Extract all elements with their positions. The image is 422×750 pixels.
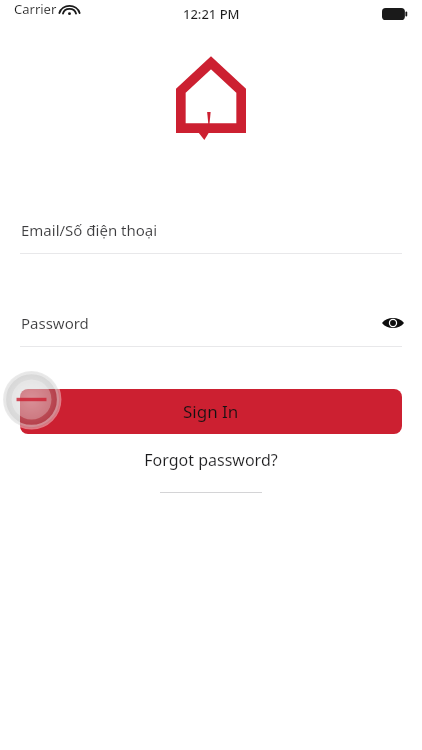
button[interactable]: Accessibility shortcut: [3, 371, 60, 428]
button[interactable]: Show password: [376, 306, 410, 340]
staticText: Sign In: [183, 400, 239, 423]
staticText: 12:21 PM: [183, 5, 240, 23]
button[interactable]: Email/Số điện thoại: [0, 206, 422, 254]
staticText: Forgot password?: [144, 449, 278, 471]
staticText: Email/Số điện thoại: [21, 220, 158, 240]
button[interactable]: Sign In: [20, 389, 402, 434]
staticText: Password: [21, 313, 89, 333]
button[interactable]: Forgot password?: [134, 445, 288, 475]
button[interactable]: [0, 299, 422, 347]
staticText: Carrier: [14, 0, 57, 18]
